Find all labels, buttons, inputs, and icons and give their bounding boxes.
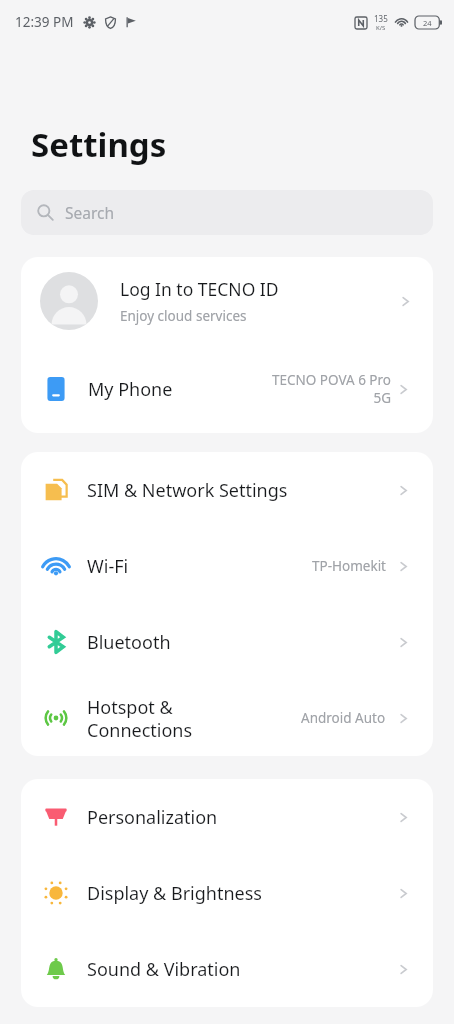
- staticText: K/S: [376, 24, 386, 32]
- button[interactable]: Personalization: [21, 779, 433, 855]
- staticText: 24: [423, 18, 432, 28]
- other: Hotspot and Connections: [42, 704, 70, 732]
- button[interactable]: Wi-Fi: [21, 528, 433, 604]
- button[interactable]: Bluetooth: [21, 604, 433, 680]
- staticText: Hotspot & Connections: [87, 695, 193, 742]
- staticText: Settings: [31, 122, 167, 167]
- staticText: 12:39 PM: [15, 13, 74, 31]
- staticText: My Phone: [88, 377, 173, 402]
- staticText: TECNO POVA 6 Pro 5G: [255, 371, 391, 407]
- staticText: Sound & Vibration: [87, 957, 241, 982]
- other: Wi-Fi: [42, 552, 70, 580]
- staticText: Bluetooth: [87, 630, 171, 655]
- staticText: Android Auto: [301, 709, 386, 727]
- other: Bluetooth: [42, 628, 70, 656]
- button[interactable]: SIM and Network Settings: [21, 452, 433, 528]
- other: Sound and Vibration: [42, 955, 70, 983]
- staticText: Search: [65, 202, 115, 223]
- button[interactable]: Display and Brightness: [21, 855, 433, 931]
- other: Display and Brightness: [42, 879, 70, 907]
- button[interactable]: Hotspot and Connections: [21, 680, 433, 756]
- button[interactable]: Sound and Vibration: [21, 931, 433, 1007]
- staticText: TP-Homekit: [312, 557, 386, 575]
- staticText: 135: [374, 13, 388, 24]
- other: Personalization: [42, 803, 70, 831]
- staticText: Display & Brightness: [87, 881, 262, 906]
- staticText: Wi-Fi: [87, 554, 129, 579]
- staticText: Log In to TECNO ID: [120, 277, 279, 301]
- button[interactable]: Log In to TECNO ID: [21, 257, 433, 345]
- button[interactable]: My Phone: [21, 345, 433, 433]
- button[interactable]: Search: [21, 190, 433, 235]
- staticText: SIM & Network Settings: [87, 478, 288, 503]
- staticText: Enjoy cloud services: [120, 307, 247, 325]
- staticText: Personalization: [87, 805, 218, 830]
- other: SIM and Network Settings: [42, 476, 70, 504]
